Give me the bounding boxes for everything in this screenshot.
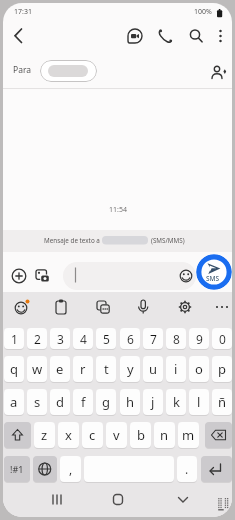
button[interactable]	[50, 296, 72, 318]
button[interactable]	[205, 422, 232, 448]
button[interactable]	[10, 267, 28, 285]
button[interactable]: e	[50, 356, 70, 382]
staticText: 5	[103, 331, 110, 347]
staticText: v	[113, 426, 120, 444]
button[interactable]	[33, 456, 57, 482]
button[interactable]: ñ	[212, 389, 232, 415]
button[interactable]: i	[166, 356, 186, 382]
staticText: 1	[11, 331, 18, 347]
button[interactable]: 0	[212, 328, 232, 349]
button[interactable]	[154, 25, 176, 47]
button[interactable]	[10, 296, 32, 318]
button[interactable]: SMS	[196, 254, 232, 290]
button[interactable]: y	[120, 356, 140, 382]
staticText: o	[195, 360, 203, 378]
button[interactable]	[171, 488, 195, 512]
button[interactable]: o	[189, 356, 209, 382]
staticText: k	[173, 393, 180, 411]
button[interactable]	[210, 25, 232, 47]
staticText: d	[56, 393, 64, 411]
button[interactable]: l	[189, 389, 209, 415]
staticText: ,	[69, 461, 73, 477]
staticText: Mensaje de texto a	[44, 236, 100, 245]
staticText: f	[81, 393, 86, 411]
staticText: j	[151, 393, 155, 411]
button[interactable]: c	[82, 422, 103, 448]
staticText: ñ	[218, 393, 227, 411]
staticText: 17:31	[14, 7, 32, 17]
button[interactable]: r	[73, 356, 93, 382]
button[interactable]: a	[4, 389, 24, 415]
button[interactable]: q	[4, 356, 24, 382]
button[interactable]: .	[177, 456, 197, 482]
staticText: y	[127, 360, 134, 378]
button[interactable]: s	[27, 389, 47, 415]
button[interactable]: d	[50, 389, 70, 415]
button[interactable]: k	[166, 389, 186, 415]
staticText: n	[160, 426, 169, 444]
staticText: z	[41, 426, 48, 444]
button[interactable]: 9	[189, 328, 209, 349]
staticText: 11:54	[109, 205, 127, 215]
button[interactable]	[124, 25, 146, 47]
button[interactable]	[174, 296, 196, 318]
staticText: 4	[80, 331, 87, 347]
button[interactable]: !#1	[4, 456, 30, 482]
button[interactable]: 4	[73, 328, 93, 349]
button[interactable]	[185, 25, 207, 47]
button[interactable]	[92, 296, 114, 318]
staticText: 8	[173, 331, 180, 347]
staticText: w	[32, 360, 43, 378]
staticText: s	[34, 393, 41, 411]
button[interactable]: u	[143, 356, 163, 382]
staticText: b	[137, 426, 145, 444]
staticText: i	[174, 360, 178, 378]
button[interactable]: 8	[166, 328, 186, 349]
staticText: h	[126, 393, 135, 411]
button[interactable]	[45, 488, 69, 512]
button[interactable]	[40, 60, 97, 82]
button[interactable]: m	[178, 422, 199, 448]
staticText: 6	[127, 331, 134, 347]
button[interactable]: w	[27, 356, 47, 382]
staticText: (SMS/MMS)	[151, 236, 185, 245]
button[interactable]: n	[154, 422, 175, 448]
button[interactable]: j	[143, 389, 163, 415]
staticText: g	[102, 393, 110, 411]
button[interactable]: 2	[27, 328, 47, 349]
button[interactable]: v	[106, 422, 127, 448]
button[interactable]: b	[130, 422, 151, 448]
button[interactable]: h	[120, 389, 140, 415]
button[interactable]	[211, 296, 232, 318]
staticText: SMS	[206, 274, 220, 283]
button[interactable]: x	[58, 422, 79, 448]
staticText: q	[10, 360, 18, 378]
button[interactable]	[106, 488, 130, 512]
button[interactable]	[201, 456, 232, 482]
button[interactable]: 6	[120, 328, 140, 349]
button[interactable]: z	[34, 422, 55, 448]
button[interactable]: g	[96, 389, 116, 415]
button[interactable]	[207, 61, 231, 85]
button[interactable]: p	[212, 356, 232, 382]
button[interactable]: f	[73, 389, 93, 415]
button[interactable]: 7	[143, 328, 163, 349]
button[interactable]	[6, 23, 32, 49]
button[interactable]	[33, 267, 51, 285]
staticText: x	[65, 426, 72, 444]
staticText: a	[10, 393, 18, 411]
staticText: 0	[219, 331, 226, 347]
staticText: .	[185, 461, 189, 477]
button[interactable]: ,	[60, 456, 81, 482]
staticText: p	[218, 360, 226, 378]
button[interactable]: 1	[4, 328, 24, 349]
button[interactable]: t	[96, 356, 116, 382]
staticText: 7	[150, 331, 157, 347]
button[interactable]	[63, 262, 196, 290]
staticText: e	[56, 360, 64, 378]
button[interactable]: 3	[50, 328, 70, 349]
button[interactable]	[132, 296, 154, 318]
button[interactable]	[4, 422, 31, 448]
button[interactable]: 5	[96, 328, 116, 349]
